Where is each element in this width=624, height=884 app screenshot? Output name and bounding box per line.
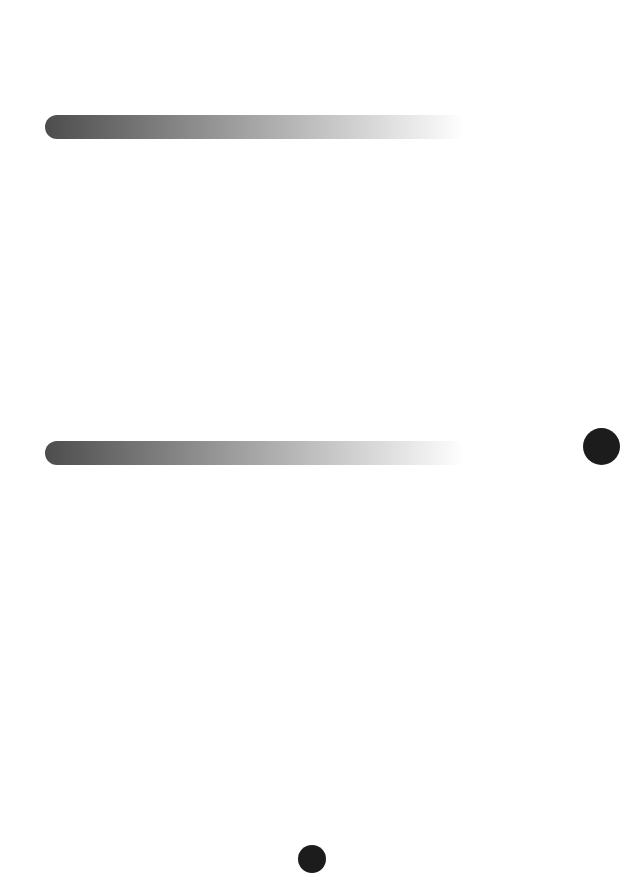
button[interactable]: Home (298, 845, 326, 873)
button[interactable]: Headline (45, 115, 465, 139)
button[interactable]: Section header (45, 441, 465, 465)
button[interactable]: Add (583, 428, 620, 465)
